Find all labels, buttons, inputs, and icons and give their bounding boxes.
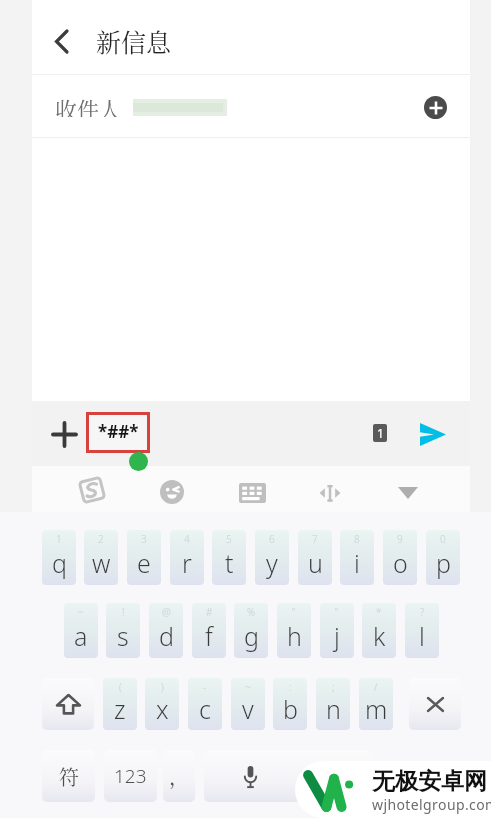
button[interactable]: @ bbox=[149, 603, 183, 658]
staticText: a bbox=[74, 619, 88, 653]
staticText: 8 bbox=[354, 532, 360, 546]
button[interactable]: 2 bbox=[84, 530, 118, 585]
button[interactable]: Add attachment bbox=[46, 416, 82, 452]
staticText: ) bbox=[161, 680, 164, 694]
staticText: ! bbox=[122, 605, 125, 619]
staticText: 123 bbox=[114, 763, 147, 789]
button[interactable]: # bbox=[192, 603, 226, 658]
staticText: u bbox=[308, 546, 323, 580]
staticText: y bbox=[266, 546, 278, 580]
button[interactable]: ~ bbox=[231, 678, 265, 730]
staticText: v bbox=[242, 692, 254, 726]
staticText: ; bbox=[332, 680, 335, 694]
staticText: / bbox=[374, 680, 378, 694]
button[interactable]: 4 bbox=[170, 530, 204, 585]
staticText: f bbox=[205, 619, 213, 653]
staticText: j bbox=[334, 619, 340, 653]
button[interactable]: ” bbox=[320, 603, 354, 658]
button[interactable]: Hide keyboard bbox=[391, 476, 425, 510]
button[interactable]: Space bbox=[204, 750, 372, 802]
staticText: t bbox=[225, 546, 234, 580]
staticText: 收件人 bbox=[55, 93, 122, 117]
button[interactable]: 123 bbox=[104, 750, 157, 802]
staticText: 1 bbox=[56, 532, 62, 546]
staticText: 新信息 bbox=[96, 23, 172, 55]
staticText: s bbox=[117, 619, 129, 653]
staticText: 4 bbox=[184, 532, 190, 546]
button[interactable]: ) bbox=[145, 678, 179, 730]
staticText: *##* bbox=[98, 420, 139, 443]
button[interactable]: Add recipient bbox=[424, 96, 447, 119]
staticText: 9 bbox=[397, 532, 403, 546]
staticText: k bbox=[373, 619, 386, 653]
staticText: 7 bbox=[312, 532, 318, 546]
staticText: x bbox=[156, 692, 169, 726]
button[interactable]: / bbox=[359, 678, 393, 730]
button[interactable]: ( bbox=[103, 678, 137, 730]
staticText: : bbox=[289, 680, 292, 694]
button[interactable]: ? bbox=[405, 603, 439, 658]
button[interactable]: Switch keyboard layout bbox=[235, 476, 269, 510]
button[interactable]: ~ bbox=[64, 603, 98, 658]
staticText: e bbox=[137, 546, 151, 580]
button[interactable]: Input method settings bbox=[75, 473, 109, 507]
button[interactable]: Back bbox=[44, 17, 78, 65]
staticText: p bbox=[436, 546, 451, 580]
staticText: i bbox=[354, 546, 360, 580]
button[interactable]: Delete bbox=[409, 678, 461, 730]
staticText: 无极安卓网 bbox=[372, 767, 487, 796]
button[interactable]: ! bbox=[106, 603, 140, 658]
button[interactable]: Emoji bbox=[155, 475, 189, 509]
button[interactable]: : bbox=[273, 678, 307, 730]
button[interactable]: 5 bbox=[212, 530, 246, 585]
button[interactable]: 9 bbox=[383, 530, 417, 585]
staticText: o bbox=[393, 546, 408, 580]
button[interactable]: Shift bbox=[42, 678, 94, 730]
staticText: 符 bbox=[59, 762, 79, 791]
staticText: “ bbox=[292, 605, 296, 619]
staticText: # bbox=[206, 605, 213, 619]
button[interactable]: 8 bbox=[340, 530, 374, 585]
staticText: m bbox=[365, 692, 388, 726]
staticText: q bbox=[52, 546, 67, 580]
button[interactable]: % bbox=[234, 603, 268, 658]
button[interactable]: 符 bbox=[42, 750, 95, 802]
staticText: ? bbox=[420, 605, 425, 619]
button[interactable]: Move cursor bbox=[313, 476, 347, 510]
staticText: 6 bbox=[269, 532, 275, 546]
staticText: ， bbox=[169, 762, 189, 791]
staticText: d bbox=[159, 619, 174, 653]
button[interactable]: 1 bbox=[42, 530, 76, 585]
button[interactable]: “ bbox=[277, 603, 311, 658]
button[interactable]: ; bbox=[316, 678, 350, 730]
button[interactable]: 3 bbox=[127, 530, 161, 585]
button[interactable]: ， bbox=[163, 750, 195, 802]
staticText: 1 bbox=[377, 425, 384, 441]
button[interactable]: * bbox=[362, 603, 396, 658]
staticText: g bbox=[244, 619, 259, 653]
staticText: n bbox=[326, 692, 341, 726]
staticText: z bbox=[114, 692, 126, 726]
staticText: ( bbox=[119, 680, 122, 694]
staticText: 2 bbox=[98, 532, 104, 546]
button[interactable]: 7 bbox=[298, 530, 332, 585]
staticText: 5 bbox=[226, 532, 232, 546]
staticText: r bbox=[182, 546, 192, 580]
staticText: - bbox=[203, 680, 207, 694]
staticText: w bbox=[92, 546, 111, 580]
button[interactable]: - bbox=[188, 678, 222, 730]
staticText: ” bbox=[335, 605, 339, 619]
staticText: * bbox=[376, 605, 382, 619]
staticText: h bbox=[287, 619, 302, 653]
staticText: c bbox=[199, 692, 211, 726]
staticText: 3 bbox=[141, 532, 147, 546]
staticText: b bbox=[283, 692, 298, 726]
button[interactable]: 6 bbox=[255, 530, 289, 585]
button[interactable]: Send bbox=[414, 415, 452, 453]
staticText: ~ bbox=[245, 680, 251, 694]
staticText: wjhotelgroup.com bbox=[372, 795, 491, 814]
button[interactable]: 0 bbox=[426, 530, 460, 585]
staticText: @ bbox=[162, 605, 171, 619]
staticText: 0 bbox=[440, 532, 446, 546]
staticText: ~ bbox=[78, 605, 84, 619]
